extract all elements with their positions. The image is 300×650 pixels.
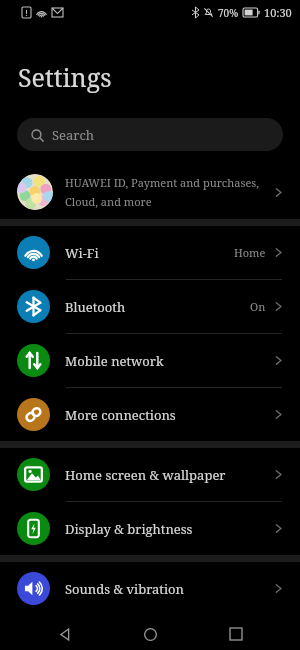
staticText: Home: [234, 245, 266, 260]
button[interactable]: Home: [128, 618, 172, 650]
button[interactable]: Wi-Fi: [0, 226, 300, 279]
button[interactable]: HUAWEI ID, Payment and purchases,: [0, 165, 300, 219]
button[interactable]: Search: [17, 118, 283, 151]
button[interactable]: More connections: [0, 388, 300, 441]
staticText: Display & brightness: [65, 520, 273, 538]
staticText: Bluetooth: [65, 298, 250, 316]
staticText: HUAWEI ID, Payment and purchases,: [65, 175, 259, 190]
button[interactable]: Recent apps: [214, 618, 258, 650]
staticText: 10:30: [264, 5, 292, 20]
button[interactable]: Back: [42, 618, 86, 650]
staticText: Search: [52, 126, 95, 144]
staticText: Sounds & vibration: [65, 580, 273, 598]
staticText: Mobile network: [65, 352, 273, 370]
button[interactable]: Bluetooth: [0, 280, 300, 333]
button[interactable]: Mobile network: [0, 334, 300, 387]
staticText: 70%: [218, 6, 239, 20]
button[interactable]: Sounds & vibration: [0, 562, 300, 615]
staticText: Wi-Fi: [65, 244, 234, 262]
staticText: Settings: [18, 60, 112, 94]
button[interactable]: Home screen & wallpaper: [0, 448, 300, 501]
button[interactable]: Display & brightness: [0, 502, 300, 555]
staticText: More connections: [65, 406, 273, 424]
staticText: On: [250, 299, 266, 314]
staticText: Home screen & wallpaper: [65, 466, 273, 484]
staticText: Cloud, and more: [65, 194, 152, 209]
